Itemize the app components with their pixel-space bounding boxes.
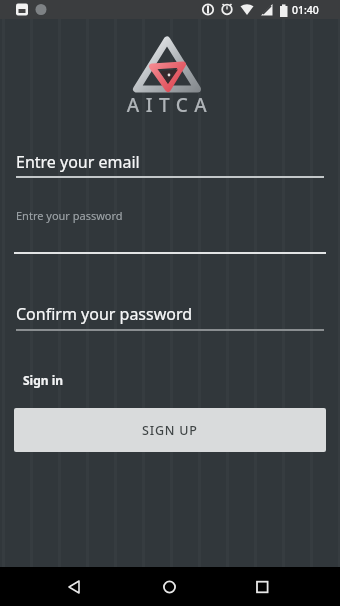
staticText: Entre your password bbox=[16, 208, 123, 223]
staticText: 01:40 bbox=[292, 3, 319, 17]
button[interactable]: SIGN UP bbox=[14, 408, 326, 452]
button[interactable] bbox=[114, 567, 227, 606]
staticText: AITCA bbox=[0, 92, 340, 118]
button[interactable] bbox=[0, 567, 114, 606]
staticText: SIGN UP bbox=[142, 422, 198, 439]
staticText: Entre your email bbox=[16, 151, 140, 173]
button[interactable] bbox=[227, 567, 340, 606]
button[interactable]: Sign in bbox=[23, 372, 64, 388]
staticText: Confirm your password bbox=[16, 303, 193, 325]
